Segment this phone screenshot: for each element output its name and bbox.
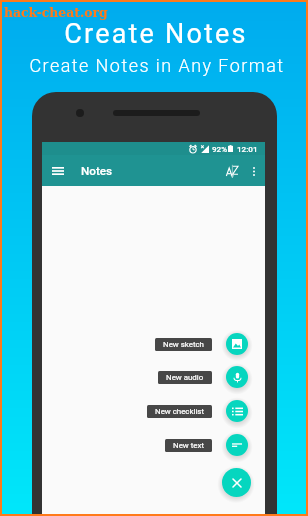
- button[interactable]: New audio: [226, 366, 248, 388]
- button[interactable]: Navigation menu: [45, 158, 71, 184]
- button[interactable]: New checklist: [226, 400, 248, 422]
- staticText: New checklist: [155, 407, 204, 416]
- staticText: 92%: [212, 144, 228, 153]
- staticText: hack-cheat.org: [4, 5, 108, 20]
- staticText: 12:01: [237, 144, 258, 153]
- staticText: New text: [173, 441, 204, 450]
- button[interactable]: Sort A to Z: [220, 159, 244, 183]
- button[interactable]: New audio: [158, 371, 212, 384]
- button[interactable]: New text: [165, 439, 212, 452]
- button[interactable]: More options: [245, 162, 263, 180]
- staticText: Create Notes: [2, 18, 308, 50]
- staticText: New sketch: [163, 340, 204, 349]
- button[interactable]: New sketch: [155, 338, 212, 351]
- button[interactable]: New checklist: [147, 405, 212, 418]
- button[interactable]: New text: [226, 434, 248, 456]
- button[interactable]: New sketch: [226, 333, 248, 355]
- staticText: Create Notes in Any Format: [3, 55, 308, 76]
- staticText: Notes: [81, 164, 113, 178]
- button[interactable]: Close create menu: [222, 468, 251, 497]
- staticText: New audio: [166, 373, 204, 382]
